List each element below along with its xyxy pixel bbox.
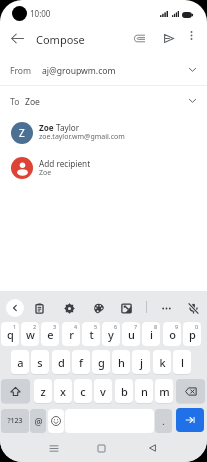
staticText: r [69,327,74,342]
button[interactable]: Back [142,438,162,458]
staticText: 1 [13,323,17,330]
button[interactable]: x [54,379,72,403]
button[interactable]: h [112,350,130,374]
staticText: aj@groupwm.com [42,65,116,77]
staticText: q [7,327,14,342]
staticText: d [58,355,65,370]
button[interactable]: Keyboard settings [60,299,78,317]
button[interactable]: b [115,379,133,403]
button[interactable]: . [155,409,172,433]
staticText: Taylor [56,122,80,133]
staticText: 2 [33,323,37,330]
button[interactable]: z [34,379,52,403]
button[interactable]: a [11,350,29,374]
staticText: o [169,327,176,342]
staticText: 9 [175,323,179,330]
button[interactable]: p [183,322,201,346]
button[interactable]: d [52,350,70,374]
button[interactable]: Attach file [126,25,152,51]
staticText: h [118,355,125,370]
button[interactable]: @ [30,409,46,433]
staticText: 3 [53,323,57,330]
staticText: p [189,327,196,342]
staticText: @ [34,415,43,427]
staticText: f [79,355,83,370]
button[interactable]: Enter [176,408,204,432]
staticText: 4 [74,323,78,330]
button[interactable]: Send [155,25,181,51]
staticText: 6 [114,323,118,330]
button[interactable]: m [155,379,173,403]
button[interactable]: q [1,322,19,346]
button[interactable]: Add recipient [0,152,207,184]
button[interactable]: ?123 [1,409,29,433]
button[interactable]: g [92,350,110,374]
button[interactable]: f [72,350,90,374]
staticText: t [89,327,94,342]
staticText: To [10,96,20,108]
button[interactable]: From [0,55,207,85]
button[interactable]: More options [181,25,201,45]
button[interactable]: j [132,350,150,374]
staticText: b [121,384,128,399]
staticText: g [98,355,105,370]
button[interactable]: t [82,322,100,346]
staticText: Zoe [39,168,52,178]
button[interactable]: Emoji [48,409,64,433]
button[interactable]: Recent apps [44,438,64,458]
staticText: c [80,384,86,399]
staticText: n [141,384,148,399]
staticText: 10:00 [30,8,51,19]
staticText: Zoe [25,96,40,108]
staticText: . [162,415,165,427]
button[interactable]: s [31,350,49,374]
button[interactable]: n [135,379,153,403]
button[interactable]: More options [157,299,175,317]
staticText: From [10,65,32,77]
button[interactable]: Themes [89,299,107,317]
staticText: l [181,355,184,370]
button[interactable]: Backspace [176,379,205,403]
staticText: 0 [195,323,199,330]
button[interactable]: Hide toolbar [6,299,24,317]
button[interactable]: c [74,379,92,403]
staticText: Zoe [39,122,56,133]
staticText: k [159,355,166,370]
staticText: ?123 [7,416,23,426]
button[interactable]: e [41,322,59,346]
button[interactable]: Clipboard [30,299,48,317]
button[interactable]: u [122,322,140,346]
staticText: Compose [36,32,85,47]
staticText: y [108,327,114,342]
button[interactable]: y [102,322,120,346]
button[interactable]: Z [0,117,207,149]
staticText: x [60,384,66,399]
staticText: u [128,327,135,342]
button[interactable]: Home [91,438,111,458]
button[interactable]: To [0,86,207,116]
button[interactable]: o [163,322,181,346]
staticText: w [26,327,35,342]
staticText: Add recipient [39,158,91,169]
button[interactable]: Voice typing off [184,299,202,317]
button[interactable]: Shift [1,379,30,403]
button[interactable]: Navigate up [4,25,30,51]
staticText: Z [19,126,25,140]
staticText: zoe.taylor.wm@gmail.com [39,132,125,142]
button[interactable]: r [62,322,80,346]
button[interactable]: i [142,322,160,346]
button[interactable]: Stickers [117,299,135,317]
staticText: 5 [94,323,98,330]
staticText: z [40,384,46,399]
button[interactable]: w [21,322,39,346]
button[interactable]: k [153,350,171,374]
staticText: e [47,327,54,342]
staticText: j [140,355,143,370]
button[interactable]: l [173,350,191,374]
button[interactable]: v [94,379,112,403]
staticText: a [17,355,24,370]
staticText: i [150,327,153,342]
staticText: 7 [134,323,138,330]
staticText: v [100,384,106,399]
